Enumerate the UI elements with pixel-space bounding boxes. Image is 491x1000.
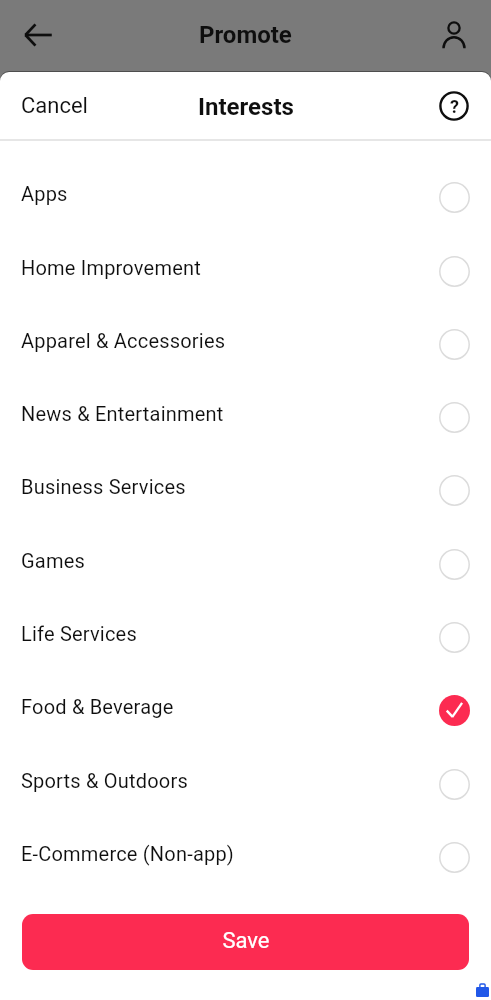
staticText: Apparel & Accessories (21, 329, 439, 352)
button[interactable]: Food & Beverage (0, 673, 491, 748)
staticText: Save (222, 928, 270, 954)
staticText: News & Entertainment (21, 402, 439, 425)
staticText: Games (21, 549, 439, 572)
staticText: Promote (199, 21, 292, 49)
button[interactable]: Home Improvement (0, 235, 491, 307)
staticText: Apps (21, 182, 439, 205)
staticText: Interests (198, 93, 294, 121)
button[interactable]: Apps (0, 160, 491, 235)
button[interactable]: Games (0, 527, 491, 601)
button[interactable]: Sports & Outdoors (0, 748, 491, 820)
button[interactable]: E-Commerce (Non-app) (0, 820, 491, 894)
staticText: Business Services (21, 475, 439, 498)
button[interactable]: Cancel (8, 84, 101, 128)
button[interactable]: Back (14, 11, 62, 59)
staticText: Home Improvement (21, 256, 439, 279)
button[interactable]: Business Services (0, 454, 491, 527)
button[interactable]: Apparel & Accessories (0, 307, 491, 381)
button[interactable]: Life Services (0, 601, 491, 673)
staticText: ? (450, 96, 459, 117)
button[interactable]: Account (430, 11, 478, 59)
button[interactable]: Help (432, 84, 476, 128)
staticText: E-Commerce (Non-app) (21, 842, 439, 865)
other: Work profile (476, 984, 489, 997)
button[interactable]: News & Entertainment (0, 381, 491, 454)
staticText: Life Services (21, 622, 439, 645)
staticText: Sports & Outdoors (21, 769, 439, 792)
staticText: Cancel (21, 93, 88, 119)
staticText: Food & Beverage (21, 695, 439, 718)
button[interactable]: Save (22, 914, 469, 970)
